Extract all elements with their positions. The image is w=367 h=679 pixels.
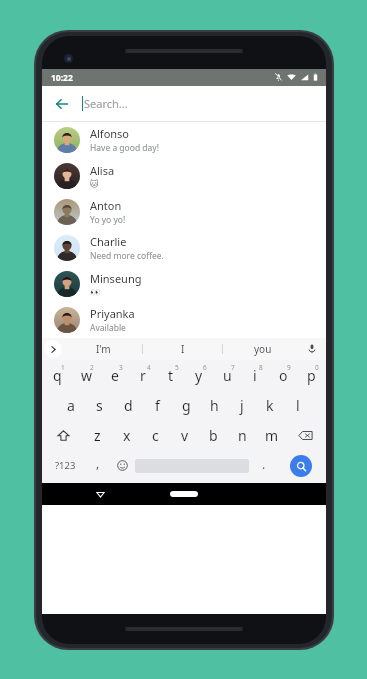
staticText: 3 (119, 363, 123, 372)
button[interactable]: g (172, 392, 200, 419)
button[interactable]: I (143, 338, 222, 360)
button[interactable]: c (141, 422, 170, 449)
staticText: q (53, 366, 62, 385)
button[interactable]: Voice input (303, 340, 321, 358)
button[interactable]: ?123 (45, 452, 85, 479)
staticText: 9 (287, 363, 291, 372)
button[interactable]: Alfonso (42, 122, 326, 158)
button[interactable]: Priyanka (42, 302, 326, 338)
button[interactable]: i (241, 362, 269, 389)
button[interactable]: Back (48, 90, 76, 118)
button[interactable]: Backspace (286, 422, 325, 449)
staticText: I (181, 342, 185, 356)
staticText: 👀 (90, 287, 101, 297)
button[interactable]: Search (290, 455, 312, 477)
staticText: Alfonso (90, 126, 130, 141)
staticText: h (210, 396, 219, 415)
button[interactable]: m (257, 422, 286, 449)
button[interactable]: More suggestions (44, 340, 62, 358)
button[interactable]: b (199, 422, 228, 449)
staticText: Priyanka (90, 306, 135, 321)
staticText: c (152, 426, 159, 445)
staticText: 6 (203, 363, 207, 372)
button[interactable]: f (143, 392, 172, 419)
button[interactable]: k (256, 392, 284, 419)
button[interactable]: Charlie (42, 230, 326, 266)
staticText: e (111, 366, 119, 385)
staticText: t (168, 366, 174, 385)
staticText: v (181, 426, 189, 445)
staticText: you (254, 342, 272, 356)
staticText: 2 (90, 363, 94, 372)
staticText: Need more coffee. (90, 250, 164, 262)
button[interactable]: Search... (76, 86, 326, 121)
staticText: i (253, 366, 257, 385)
staticText: k (266, 396, 274, 415)
button[interactable]: Home (170, 491, 198, 497)
button[interactable]: x (112, 422, 141, 449)
staticText: Search... (84, 96, 128, 111)
button[interactable]: , (85, 452, 110, 479)
staticText: o (279, 366, 288, 385)
button[interactable]: r (129, 362, 157, 389)
staticText: Charlie (90, 234, 127, 249)
button[interactable]: v (170, 422, 199, 449)
button[interactable]: o (269, 362, 297, 389)
button[interactable]: q (43, 362, 72, 389)
staticText: f (155, 396, 160, 415)
staticText: r (140, 366, 146, 385)
staticText: w (81, 366, 93, 385)
staticText: I'm (96, 342, 111, 356)
staticText: . (262, 456, 266, 472)
staticText: j (240, 396, 244, 415)
staticText: 1 (61, 363, 65, 372)
staticText: p (307, 366, 316, 385)
button[interactable]: j (228, 392, 256, 419)
staticText: Anton (90, 198, 122, 213)
button[interactable]: Hide keyboard (90, 484, 110, 504)
button[interactable]: Minseung (42, 266, 326, 302)
staticText: 5 (175, 363, 179, 372)
button[interactable]: I'm (64, 338, 142, 360)
staticText: m (265, 426, 279, 445)
button[interactable]: n (228, 422, 257, 449)
button[interactable]: w (72, 362, 101, 389)
staticText: s (96, 396, 103, 415)
button[interactable]: y (185, 362, 213, 389)
staticText: Have a good day! (90, 142, 159, 154)
staticText: 8 (259, 363, 263, 372)
staticText: b (209, 426, 218, 445)
button[interactable]: Shift (43, 422, 83, 449)
button[interactable]: . (249, 452, 279, 479)
button[interactable]: u (213, 362, 241, 389)
staticText: 🐱 (90, 179, 99, 189)
staticText: , (96, 455, 100, 471)
staticText: ?123 (55, 459, 76, 472)
staticText: Alisa (90, 163, 115, 178)
button[interactable]: d (114, 392, 143, 419)
button[interactable]: Alisa (42, 158, 326, 194)
button[interactable]: z (83, 422, 112, 449)
staticText: n (238, 426, 247, 445)
button[interactable]: a (56, 392, 85, 419)
staticText: 10:22 (51, 72, 73, 84)
staticText: 7 (231, 363, 235, 372)
staticText: z (94, 426, 101, 445)
button[interactable]: e (101, 362, 129, 389)
button[interactable]: h (200, 392, 228, 419)
staticText: d (124, 396, 133, 415)
staticText: x (123, 426, 131, 445)
staticText: Minseung (90, 271, 142, 286)
button[interactable]: Anton (42, 194, 326, 230)
staticText: l (296, 396, 300, 415)
staticText: Yo yo yo! (90, 214, 126, 226)
staticText: a (67, 396, 75, 415)
button[interactable]: Emoji (110, 452, 135, 479)
button[interactable]: t (157, 362, 185, 389)
button[interactable]: you (223, 338, 302, 360)
button[interactable]: l (284, 392, 312, 419)
button[interactable]: p (297, 362, 325, 389)
button[interactable]: s (85, 392, 114, 419)
staticText: 0 (315, 363, 319, 372)
